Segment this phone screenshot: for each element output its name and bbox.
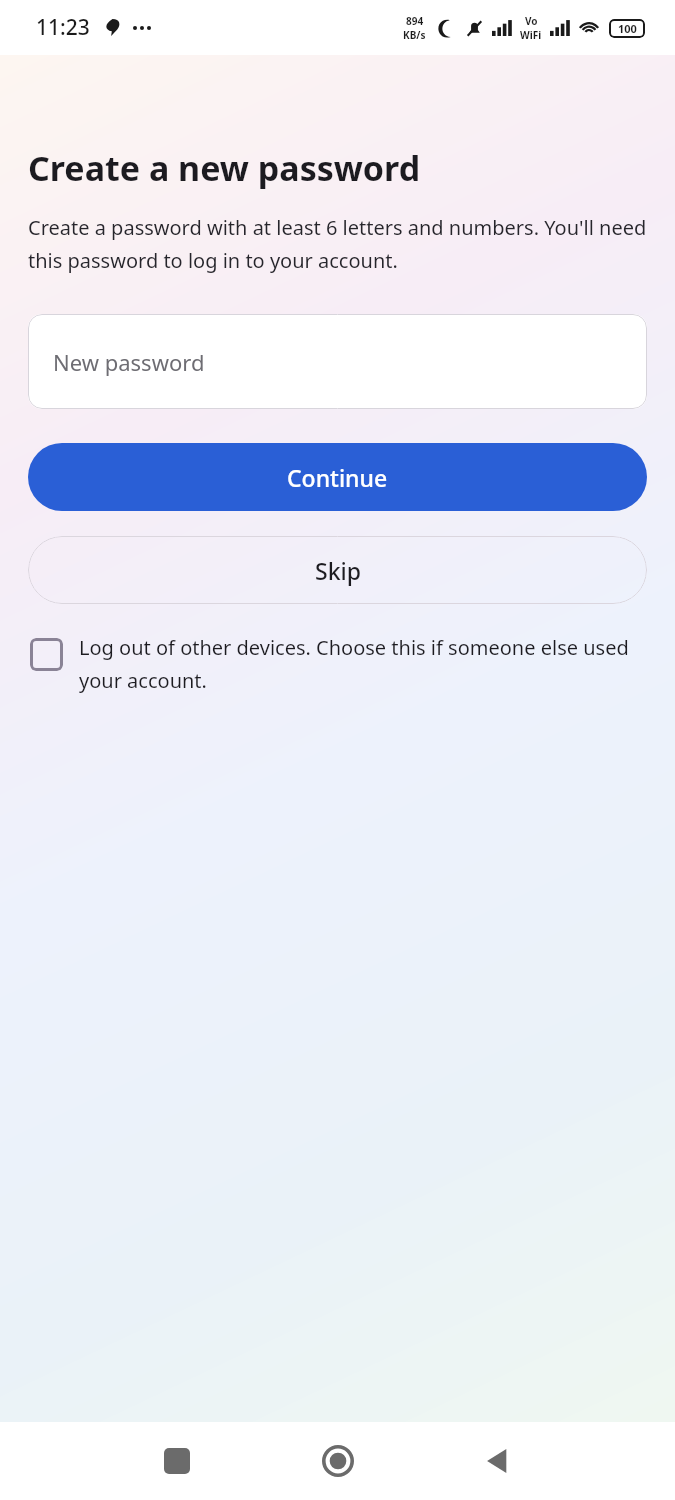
button[interactable]: New password xyxy=(28,314,647,409)
staticText: 100 xyxy=(618,21,637,36)
staticText: New password xyxy=(53,347,205,377)
button[interactable]: Back xyxy=(471,1434,525,1488)
staticText: Create a new password xyxy=(28,145,421,191)
staticText: Continue xyxy=(287,462,388,493)
staticText: KB/s xyxy=(403,28,426,42)
staticText: Log out of other devices. Choose this if… xyxy=(79,634,647,694)
staticText: Skip xyxy=(315,555,361,586)
button[interactable]: Home xyxy=(311,1434,365,1488)
staticText: 894 xyxy=(406,14,424,28)
button[interactable]: Recents xyxy=(150,1434,204,1488)
button[interactable]: Skip xyxy=(28,536,647,604)
staticText: Create a password with at least 6 letter… xyxy=(28,214,647,274)
staticText: 11:23 xyxy=(36,13,90,42)
button[interactable]: Continue xyxy=(28,443,647,511)
button[interactable]: Log out of other devices. Choose this if… xyxy=(28,634,647,694)
staticText: Vo xyxy=(525,14,538,28)
staticText: WiFi xyxy=(520,28,542,42)
